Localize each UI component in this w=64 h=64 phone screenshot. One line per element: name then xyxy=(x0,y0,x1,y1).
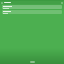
button[interactable] xyxy=(2,10,62,14)
button[interactable]: Confirm xyxy=(30,61,35,63)
button[interactable] xyxy=(2,5,62,9)
